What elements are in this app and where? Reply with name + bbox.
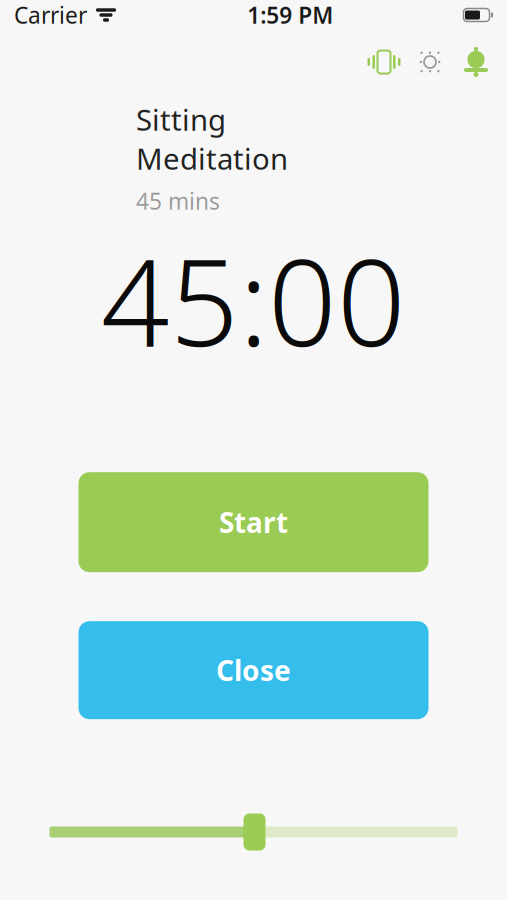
staticText: Close bbox=[216, 652, 291, 689]
staticText: 1:59 PM bbox=[247, 0, 333, 30]
staticText: Carrier bbox=[14, 0, 87, 30]
staticText: 45 mins bbox=[136, 186, 220, 216]
staticText: Sitting Meditation bbox=[136, 100, 288, 178]
staticText: 45:00 bbox=[101, 220, 406, 379]
button[interactable]: Vibration bbox=[361, 40, 407, 84]
button[interactable]: Start bbox=[78, 472, 428, 572]
staticText: Start bbox=[219, 504, 288, 541]
button[interactable]: Brightness bbox=[407, 40, 453, 84]
button[interactable]: Sound alerts bbox=[453, 40, 499, 84]
button[interactable]: Close bbox=[78, 621, 428, 719]
